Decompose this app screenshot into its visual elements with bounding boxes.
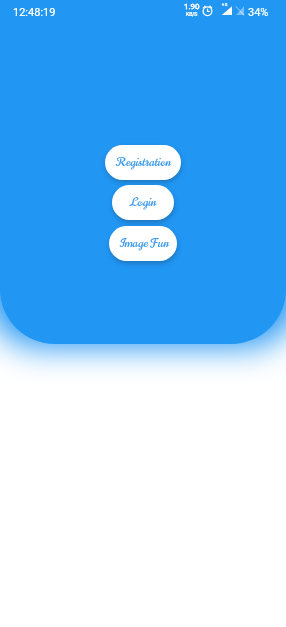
- staticText: 34%: [248, 6, 269, 19]
- button[interactable]: Image Fun: [109, 226, 177, 261]
- button[interactable]: Login: [112, 185, 174, 220]
- staticText: Login: [130, 194, 156, 211]
- staticText: Image Fun: [118, 235, 169, 252]
- staticText: 1.90: [184, 2, 200, 11]
- staticText: Registration: [116, 154, 171, 171]
- button[interactable]: Registration: [105, 145, 181, 180]
- staticText: KB/S: [186, 11, 198, 17]
- staticText: 12:48:19: [13, 6, 56, 19]
